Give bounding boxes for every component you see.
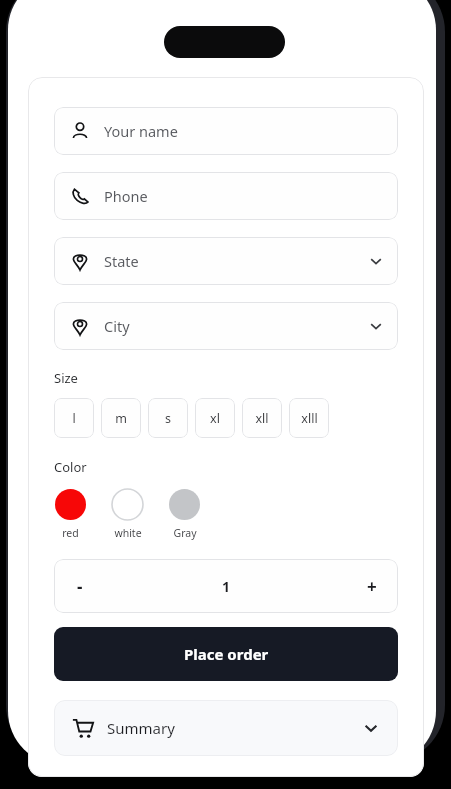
button[interactable]: Your name (54, 107, 398, 155)
staticText: xl (210, 410, 220, 427)
staticText: s (165, 410, 171, 427)
staticText: Summary (107, 718, 175, 738)
button[interactable]: xll (242, 398, 282, 438)
button[interactable]: white (111, 488, 144, 540)
staticText: Place order (184, 644, 269, 664)
staticText: Size (54, 369, 78, 387)
button[interactable]: red (54, 488, 87, 540)
button[interactable]: Increase quantity (346, 559, 398, 613)
staticText: - (77, 575, 83, 598)
button[interactable]: l (54, 398, 94, 438)
button[interactable]: Gray (168, 488, 201, 540)
staticText: Your name (104, 121, 178, 141)
button[interactable]: m (101, 398, 141, 438)
button[interactable]: Decrease quantity (54, 559, 106, 613)
staticText: Color (54, 458, 87, 476)
staticText: white (114, 526, 142, 540)
staticText: red (62, 526, 79, 540)
button[interactable]: Phone (54, 172, 398, 220)
button[interactable]: xlll (289, 398, 329, 438)
staticText: Gray (173, 526, 197, 540)
button[interactable]: Place order (54, 627, 398, 681)
staticText: State (104, 251, 139, 271)
staticText: l (72, 410, 76, 427)
staticText: m (115, 410, 127, 427)
staticText: 1 (222, 577, 231, 596)
button[interactable]: xl (195, 398, 235, 438)
staticText: xll (255, 410, 269, 427)
staticText: + (367, 575, 377, 598)
staticText: Phone (104, 186, 148, 206)
button[interactable]: Summary (54, 700, 398, 756)
button[interactable]: State (54, 237, 398, 285)
staticText: xlll (301, 410, 318, 427)
button[interactable]: s (148, 398, 188, 438)
button[interactable]: City (54, 302, 398, 350)
staticText: City (104, 316, 130, 336)
